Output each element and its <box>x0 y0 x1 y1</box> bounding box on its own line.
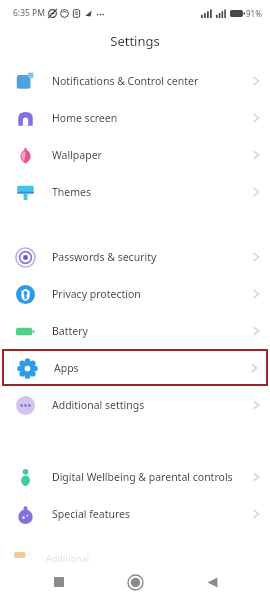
staticText: Wallpaper <box>52 148 253 162</box>
button[interactable]: Special features <box>0 495 270 532</box>
staticText: Privacy protection <box>52 287 253 301</box>
staticText: Settings <box>110 32 160 50</box>
button[interactable]: Home screen <box>0 99 270 136</box>
button[interactable]: Digital Wellbeing & parental controls <box>0 458 270 495</box>
staticText: 91% <box>246 8 262 19</box>
staticText: Additional <box>46 552 90 564</box>
staticText: Battery <box>52 324 253 338</box>
staticText: Home screen <box>52 111 253 125</box>
button[interactable]: Notifications & Control center <box>0 62 270 99</box>
button[interactable]: Additional settings <box>0 386 270 423</box>
button[interactable]: Back <box>194 564 230 600</box>
staticText: Notifications & Control center <box>52 74 253 88</box>
staticText: Additional settings <box>52 398 253 412</box>
button[interactable]: Themes <box>0 173 270 210</box>
staticText: 6:35 PM <box>13 7 45 19</box>
button[interactable]: Apps <box>2 349 268 386</box>
button[interactable]: Home <box>117 564 153 600</box>
staticText: Passwords & security <box>52 250 253 264</box>
staticText: Special features <box>52 507 253 521</box>
staticText: Digital Wellbeing & parental controls <box>52 470 253 484</box>
staticText: Apps <box>54 361 251 375</box>
button[interactable]: Passwords & security <box>0 238 270 275</box>
staticText: Themes <box>52 185 253 199</box>
button[interactable]: Battery <box>0 312 270 349</box>
button[interactable]: Privacy protection <box>0 275 270 312</box>
button[interactable]: Recent apps <box>41 564 77 600</box>
button[interactable]: Wallpaper <box>0 136 270 173</box>
